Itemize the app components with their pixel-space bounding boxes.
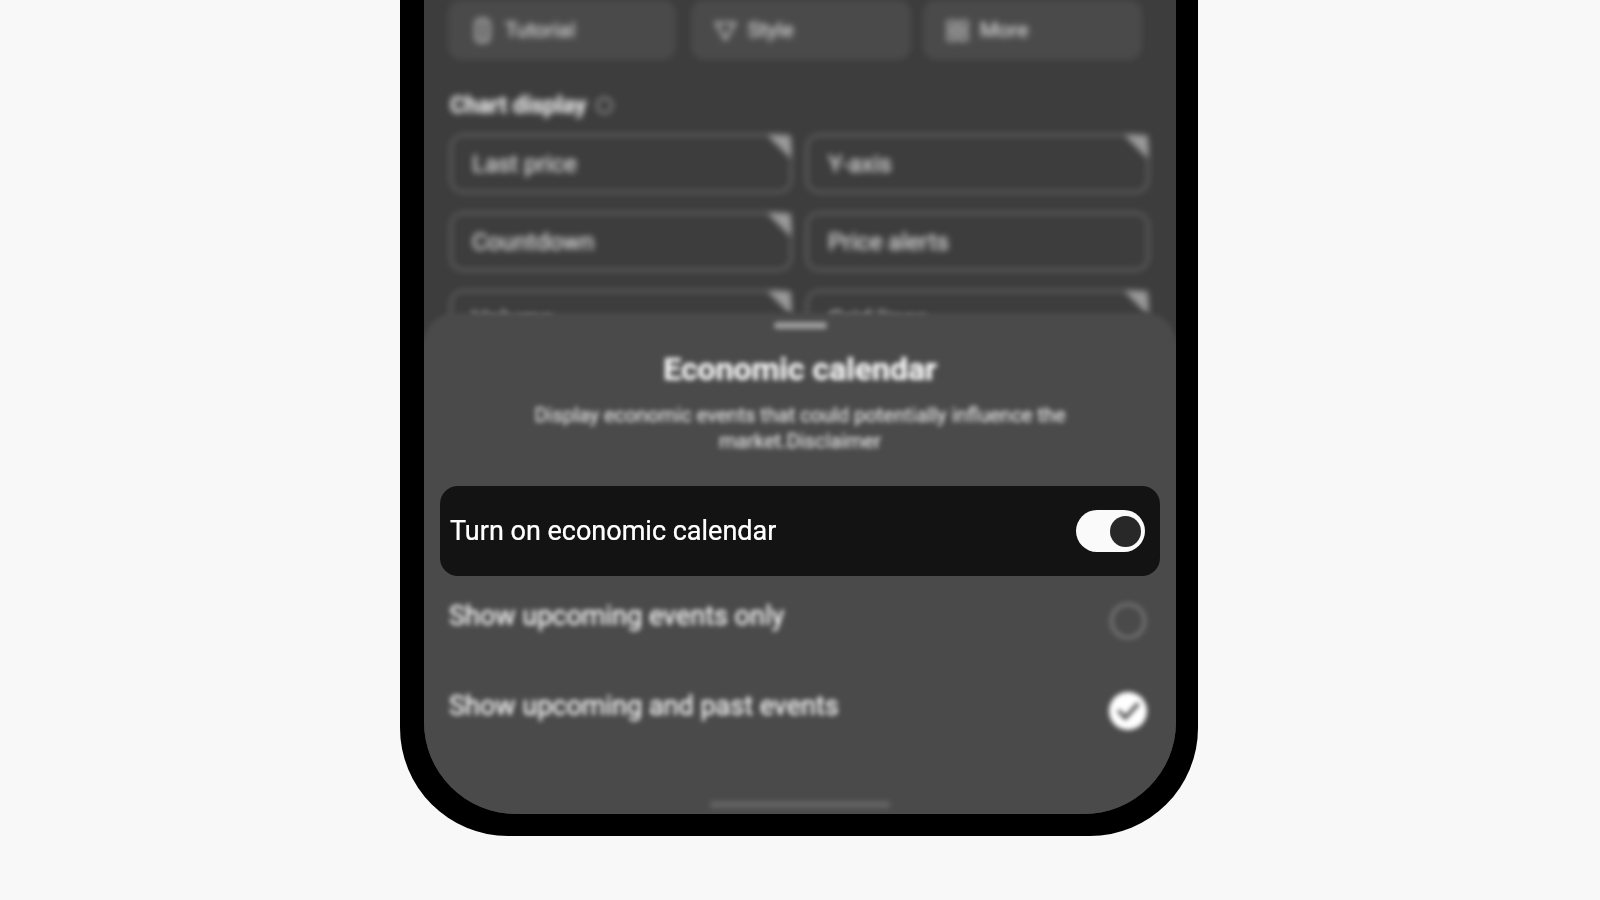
- button[interactable]: Countdown: [450, 212, 792, 271]
- button[interactable]: Volume: [450, 290, 792, 349]
- button[interactable]: Y-axis: [806, 134, 1149, 193]
- button[interactable]: Turn on economic calendar: [440, 486, 1160, 576]
- staticText: Display economic events that could poten…: [526, 403, 1074, 453]
- button[interactable]: Show upcoming and past events: [424, 666, 1176, 756]
- button[interactable]: Tutorial: [448, 0, 676, 60]
- staticText: Y-axis: [828, 150, 892, 178]
- other: Selected: [1109, 692, 1147, 730]
- other: Not selected: [1109, 602, 1147, 640]
- button[interactable]: Price alerts: [806, 212, 1149, 271]
- staticText: Chart display: [450, 92, 587, 119]
- staticText: Show upcoming events only: [449, 600, 785, 632]
- staticText: Countdown: [472, 228, 595, 256]
- staticText: Show upcoming and past events: [449, 690, 839, 722]
- button[interactable]: Last price: [450, 134, 792, 193]
- staticText: More: [980, 18, 1029, 43]
- staticText: Turn on economic calendar: [450, 515, 777, 547]
- button[interactable]: More: [923, 0, 1142, 60]
- other: Toggle economic calendar: [1076, 510, 1145, 552]
- staticText: Price alerts: [828, 228, 949, 256]
- staticText: Last price: [472, 150, 577, 178]
- button[interactable]: Style: [691, 0, 911, 60]
- button[interactable]: Show upcoming events only: [424, 576, 1176, 666]
- staticText: Grid lines: [828, 306, 928, 334]
- staticText: Style: [748, 18, 794, 43]
- staticText: Tutorial: [505, 18, 576, 43]
- staticText: Volume: [472, 306, 554, 334]
- button[interactable]: Grid lines: [806, 290, 1149, 349]
- staticText: Economic calendar: [424, 350, 1176, 388]
